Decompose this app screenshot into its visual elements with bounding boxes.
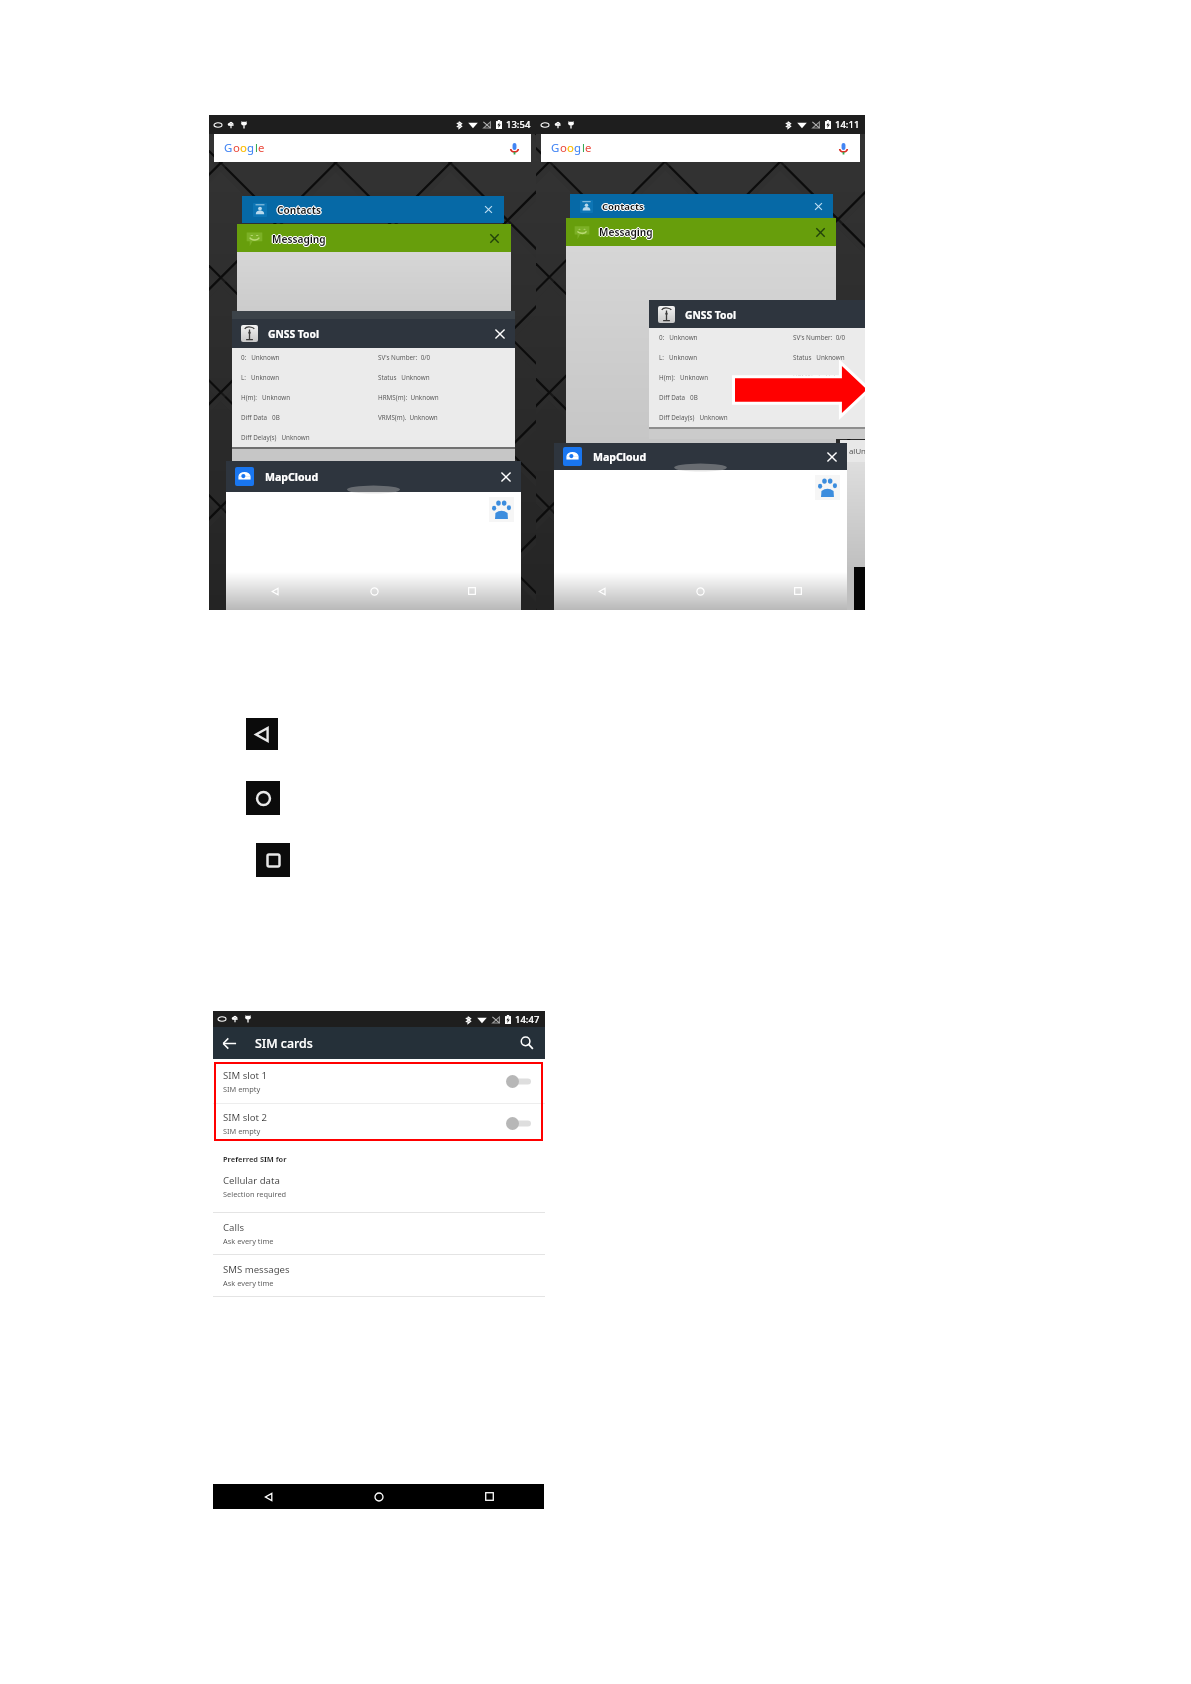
staticText: SIM empty: [223, 1084, 261, 1094]
staticText: e: [585, 140, 592, 156]
staticText: Ask every time: [223, 1278, 274, 1288]
button[interactable]: Calls: [213, 1213, 545, 1255]
staticText: G: [551, 140, 560, 156]
button[interactable]: Close MapCloud: [500, 471, 512, 483]
button[interactable]: SIM slot 1: [213, 1059, 545, 1103]
staticText: Messaging: [273, 232, 327, 246]
staticText: Messaging: [271, 232, 325, 246]
staticText: Calls: [223, 1221, 244, 1234]
staticText: 0: Unknown: [659, 333, 698, 342]
button[interactable]: Recents: [434, 1484, 544, 1509]
staticText: o: [560, 140, 567, 156]
staticText: H(m): Unknown: [241, 393, 291, 402]
button[interactable]: Home button icon: [246, 781, 280, 815]
button[interactable]: GNSS Tool: [232, 319, 515, 348]
staticText: Diff Delay(s) Unknown: [659, 413, 728, 422]
staticText: Contacts: [603, 200, 645, 213]
button[interactable]: Close Contacts: [814, 202, 823, 211]
button[interactable]: Home: [324, 1484, 434, 1509]
staticText: o: [233, 140, 240, 156]
button[interactable]: MapCloud: [226, 461, 521, 492]
button[interactable]: SMS messages: [213, 1255, 545, 1297]
button[interactable]: Recents button icon: [256, 843, 290, 877]
button[interactable]: Close MapCloud: [826, 451, 838, 463]
button[interactable]: Back: [226, 572, 325, 610]
staticText: G: [224, 140, 233, 156]
staticText: Messaging: [272, 233, 326, 247]
staticText: SIM slot 1: [223, 1069, 268, 1082]
staticText: Diff Data 0B: [241, 413, 280, 422]
staticText: SV's Number: 0/0: [793, 333, 846, 342]
button[interactable]: Baidu map: [489, 497, 514, 522]
staticText: alUn: [849, 446, 865, 457]
staticText: Messaging: [598, 225, 652, 239]
staticText: SV's Number: 0/0: [378, 353, 431, 362]
staticText: Diff Data 0B: [659, 393, 698, 402]
staticText: SIM empty: [223, 1126, 261, 1136]
button[interactable]: Contacts: [242, 196, 504, 223]
staticText: Contacts: [277, 203, 322, 217]
button[interactable]: Back: [213, 1484, 324, 1509]
staticText: SIM cards: [255, 1035, 313, 1052]
button[interactable]: Voice search: [836, 141, 851, 156]
staticText: Messaging: [600, 225, 654, 239]
staticText: 14:11: [835, 118, 860, 131]
button[interactable]: Recents: [423, 572, 521, 610]
staticText: l: [582, 140, 585, 156]
button[interactable]: G: [541, 134, 860, 162]
button[interactable]: MapCloud: [554, 443, 847, 470]
staticText: Messaging: [599, 224, 653, 238]
staticText: 14:47: [515, 1013, 540, 1026]
staticText: SIM slot 2: [223, 1111, 268, 1124]
staticText: Status Unknown: [378, 373, 430, 382]
staticText: H(m): Unknown: [659, 373, 709, 382]
staticText: L: Unknown: [241, 373, 280, 382]
button[interactable]: Home: [325, 572, 423, 610]
staticText: MapCloud: [593, 450, 647, 464]
staticText: GNSS Tool: [268, 327, 320, 341]
staticText: Contacts: [602, 201, 644, 214]
staticText: Contacts: [276, 203, 321, 217]
staticText: o: [567, 140, 574, 156]
button[interactable]: Voice search: [507, 141, 522, 156]
staticText: Contacts: [602, 200, 644, 213]
staticText: Diff Delay(s) Unknown: [241, 433, 310, 442]
button[interactable]: Messaging: [566, 218, 836, 246]
staticText: L: Unknown: [659, 353, 698, 362]
staticText: Status Unknown: [793, 353, 845, 362]
button[interactable]: Home: [651, 572, 749, 610]
button[interactable]: Close GNSS Tool: [494, 328, 506, 340]
button[interactable]: GNSS Tool: [649, 300, 865, 328]
button[interactable]: SIM slot 2: [213, 1104, 545, 1142]
staticText: g: [574, 140, 582, 156]
staticText: l: [255, 140, 258, 156]
staticText: Preferred SIM for: [223, 1154, 287, 1164]
staticText: Contacts: [278, 203, 323, 217]
button[interactable]: Baidu map: [815, 475, 840, 500]
staticText: g: [247, 140, 255, 156]
button[interactable]: Close Messaging: [489, 233, 500, 244]
staticText: 13:54: [506, 118, 531, 131]
button[interactable]: Back: [222, 1036, 237, 1051]
staticText: SMS messages: [223, 1263, 290, 1276]
button[interactable]: Recents: [749, 572, 847, 610]
button[interactable]: Close Messaging: [815, 227, 826, 238]
staticText: MapCloud: [265, 470, 319, 484]
staticText: VRMS(m). Unknown: [793, 393, 853, 402]
button[interactable]: Back: [554, 572, 651, 610]
staticText: Contacts: [277, 204, 322, 218]
staticText: 0: Unknown: [241, 353, 280, 362]
staticText: o: [240, 140, 247, 156]
staticText: Cellular data: [223, 1174, 280, 1187]
button[interactable]: G: [214, 134, 531, 162]
button[interactable]: Back button icon: [246, 718, 278, 750]
staticText: Contacts: [277, 202, 322, 216]
button[interactable]: Messaging: [237, 224, 511, 252]
staticText: Messaging: [599, 226, 653, 240]
staticText: HRMS(m): Unknown: [793, 373, 854, 382]
staticText: Messaging: [272, 232, 326, 246]
button[interactable]: Close Contacts: [484, 205, 493, 214]
staticText: Messaging: [272, 231, 326, 245]
button[interactable]: Search: [520, 1036, 534, 1050]
button[interactable]: Contacts: [570, 194, 833, 218]
